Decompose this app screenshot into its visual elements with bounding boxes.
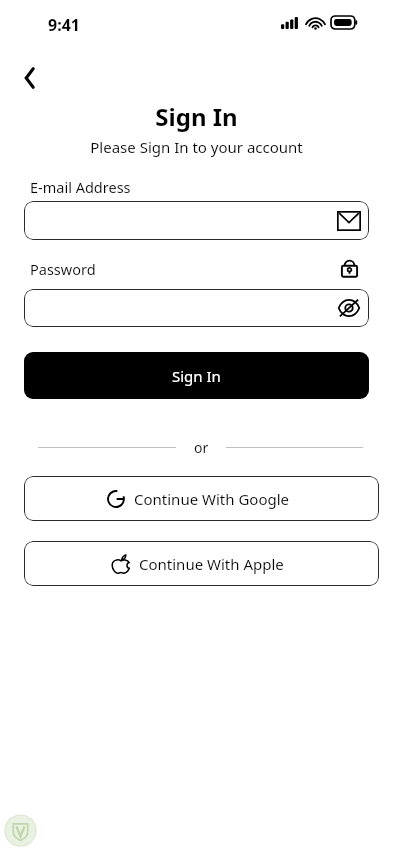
staticText: or (194, 438, 209, 457)
button[interactable]: Continue With Apple (24, 541, 379, 586)
other: Secure (340, 257, 359, 278)
button[interactable]: Sign In (24, 352, 369, 399)
staticText: Password (30, 259, 96, 279)
staticText: 9:41 (48, 14, 80, 36)
button[interactable]: Show password (337, 297, 361, 319)
button[interactable]: Back (14, 62, 46, 94)
staticText: Sign In (172, 366, 221, 386)
staticText: Please Sign In to your account (0, 137, 393, 157)
staticText: Continue With Apple (139, 554, 284, 574)
button[interactable]: E-mail address input (24, 201, 369, 240)
staticText: Sign In (0, 100, 393, 133)
staticText: E-mail Address (30, 177, 131, 197)
staticText: Continue With Google (134, 489, 290, 509)
button[interactable]: Continue With Google (24, 476, 379, 521)
button[interactable]: Password input (24, 289, 369, 327)
